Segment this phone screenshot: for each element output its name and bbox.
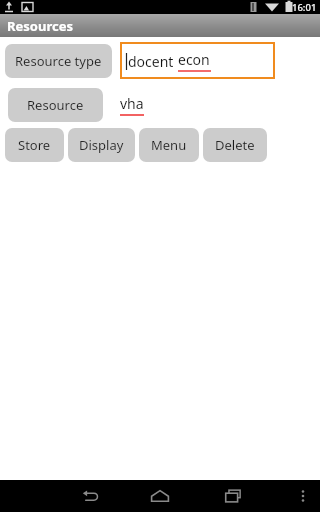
button[interactable]: Resource type xyxy=(5,44,112,78)
staticText: docent xyxy=(128,52,178,71)
button[interactable]: Resource xyxy=(8,88,103,122)
button[interactable]: Store xyxy=(5,128,64,162)
button[interactable]: Display xyxy=(68,128,135,162)
button[interactable]: Menu xyxy=(139,128,199,162)
staticText: Resources xyxy=(7,17,73,35)
staticText: vha xyxy=(120,94,144,113)
staticText: Display xyxy=(79,136,124,154)
staticText: Store xyxy=(18,136,51,154)
button[interactable]: docent xyxy=(120,42,275,79)
staticText: Resource xyxy=(27,96,84,114)
staticText: Menu xyxy=(151,136,187,154)
button[interactable]: More options xyxy=(291,480,315,512)
staticText: Resource type xyxy=(15,52,102,70)
button[interactable]: Home xyxy=(132,480,188,512)
button[interactable]: Delete xyxy=(203,128,267,162)
button[interactable]: Recent apps xyxy=(206,480,262,512)
staticText: Delete xyxy=(215,136,255,154)
button[interactable]: Back xyxy=(62,480,118,512)
staticText: 16:01 xyxy=(292,1,317,14)
staticText: econ xyxy=(178,50,210,69)
